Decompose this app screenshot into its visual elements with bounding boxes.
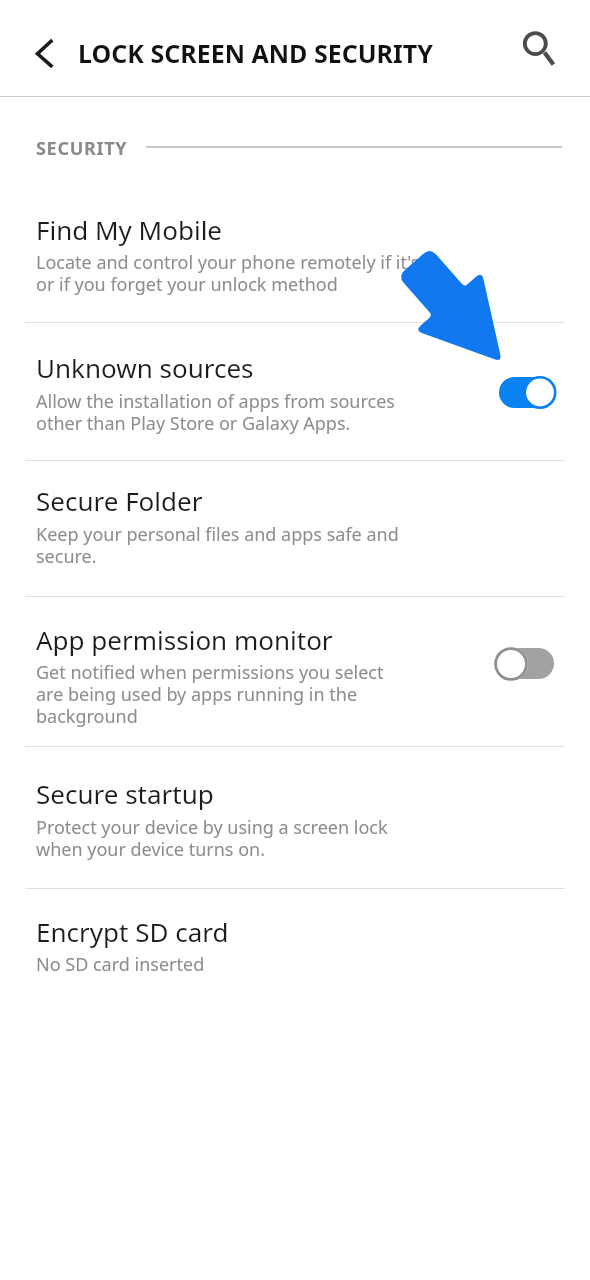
staticText: Encrypt SD card — [36, 914, 229, 949]
staticText: App permission monitor — [36, 622, 333, 657]
staticText: Secure Folder — [36, 483, 203, 518]
button[interactable] — [0, 889, 590, 999]
button[interactable] — [0, 461, 590, 597]
button[interactable] — [22, 38, 64, 80]
staticText: Find My Mobile — [36, 212, 223, 247]
button[interactable] — [493, 371, 563, 415]
staticText: LOCK SCREEN AND SECURITY — [78, 36, 433, 70]
button[interactable] — [0, 205, 590, 323]
staticText: No SD card inserted — [36, 952, 205, 977]
button[interactable] — [0, 747, 590, 889]
staticText: Unknown sources — [36, 350, 254, 385]
button[interactable] — [510, 20, 564, 74]
staticText: Get notified when permissions you select… — [36, 660, 384, 729]
button[interactable] — [491, 642, 561, 686]
staticText: Allow the installation of apps from sour… — [36, 389, 395, 436]
staticText: Locate and control your phone remotely i… — [36, 250, 440, 297]
button[interactable] — [0, 323, 590, 460]
button[interactable] — [0, 597, 590, 747]
staticText: SECURITY — [36, 136, 128, 161]
staticText: Protect your device by using a screen lo… — [36, 815, 388, 862]
staticText: Secure startup — [36, 776, 214, 811]
staticText: Keep your personal files and apps safe a… — [36, 522, 399, 569]
